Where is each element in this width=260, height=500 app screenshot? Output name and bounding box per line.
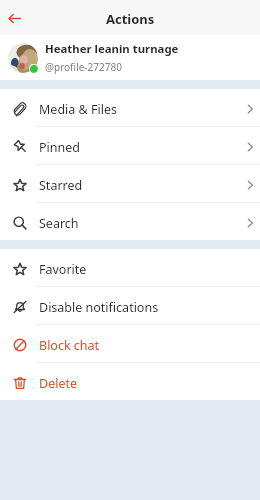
button[interactable]: Favorite: [0, 249, 260, 286]
staticText: Block chat: [39, 337, 100, 354]
staticText: Actions: [106, 10, 155, 28]
staticText: Media & Files: [39, 101, 117, 118]
staticText: Favorite: [39, 261, 87, 278]
button[interactable]: Back: [0, 3, 30, 33]
button[interactable]: Starred: [0, 165, 260, 202]
button[interactable]: Search: [0, 203, 260, 240]
button[interactable]: Pinned: [0, 127, 260, 164]
staticText: Disable notifications: [39, 299, 159, 316]
button[interactable]: Delete: [0, 363, 260, 400]
button[interactable]: Heather leanin turnage: [0, 35, 260, 80]
button[interactable]: Media & Files: [0, 89, 260, 126]
staticText: Starred: [39, 177, 83, 194]
staticText: @profile-272780: [45, 60, 122, 74]
staticText: Delete: [39, 375, 78, 392]
button[interactable]: Disable notifications: [0, 287, 260, 324]
staticText: Pinned: [39, 139, 80, 156]
staticText: Search: [39, 215, 79, 232]
button[interactable]: Block chat: [0, 325, 260, 362]
staticText: Heather leanin turnage: [45, 41, 179, 57]
